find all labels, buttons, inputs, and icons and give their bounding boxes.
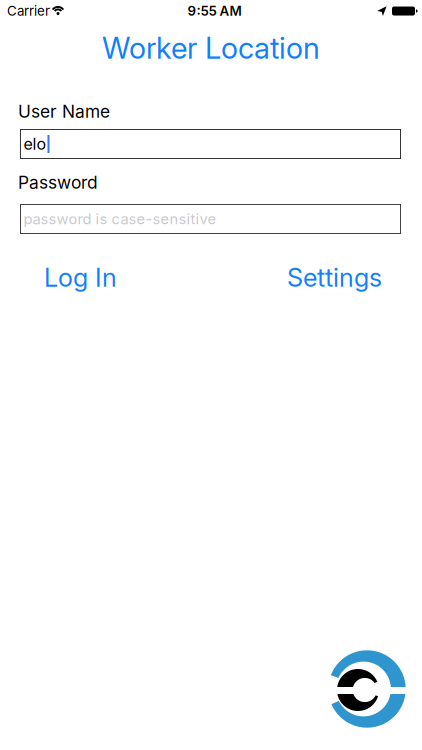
staticText: Carrier [7,3,50,19]
staticText: Settings [287,263,382,292]
button[interactable]: User Name text field [20,129,401,159]
button[interactable]: Log In [44,263,117,292]
staticText: 9:55 AM [187,3,241,19]
staticText: User Name [18,101,110,122]
staticText: Log In [44,263,117,292]
button[interactable]: Password text field [20,204,401,234]
staticText: Password [18,172,98,193]
staticText: Worker Location [102,31,320,65]
staticText: elo [23,135,46,153]
staticText: password is case-sensitive [23,210,216,228]
button[interactable]: Settings [287,263,382,292]
